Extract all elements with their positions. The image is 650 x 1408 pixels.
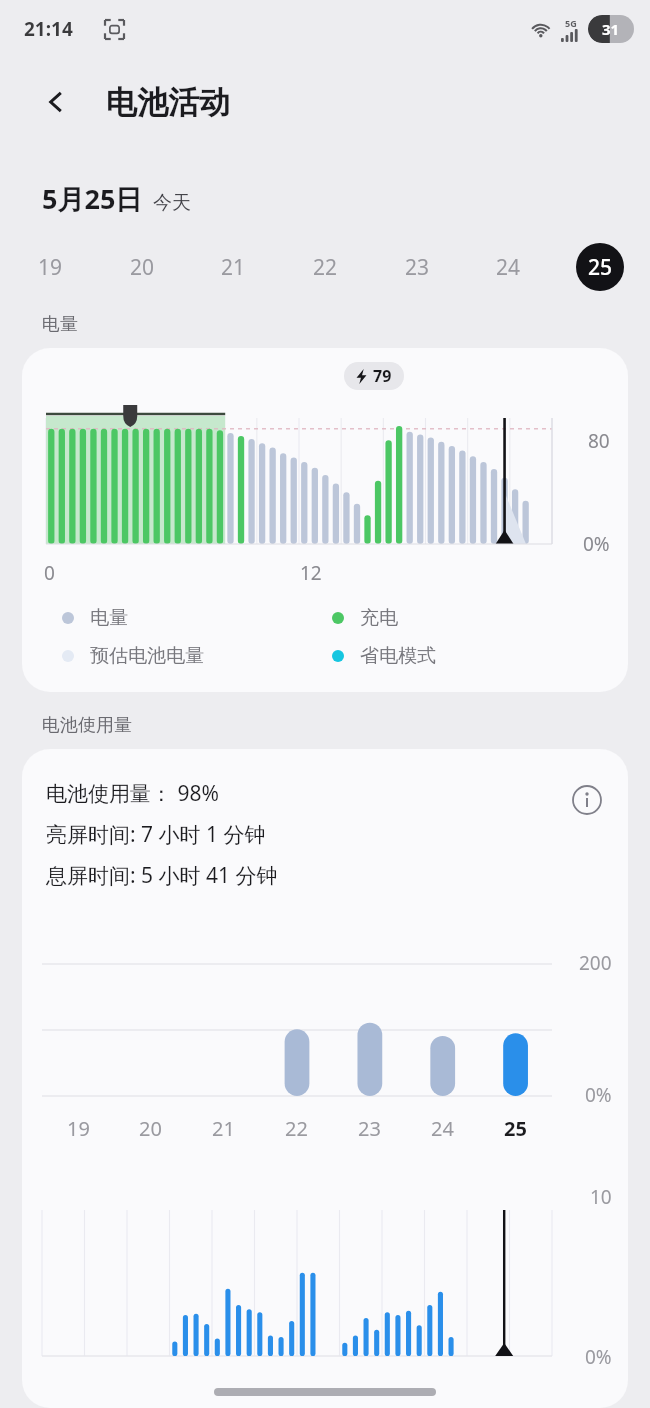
staticText: 5G	[565, 17, 577, 29]
staticText: 省电模式	[360, 644, 436, 668]
staticText: 0%	[585, 1344, 612, 1370]
staticText: 21:14	[24, 16, 73, 42]
button[interactable]: Info	[566, 779, 608, 821]
button[interactable]: 省电模式	[332, 644, 602, 668]
button[interactable]: 23	[393, 243, 441, 291]
staticText: 25	[588, 253, 613, 282]
button[interactable]: 20	[118, 243, 166, 291]
staticText: 0	[44, 560, 55, 586]
button[interactable]: 充电	[332, 606, 602, 630]
staticText: 25	[504, 1115, 527, 1142]
staticText: 今天	[153, 191, 191, 215]
button[interactable]: 22	[301, 243, 349, 291]
staticText: 0%	[583, 531, 610, 557]
staticText: 79	[373, 365, 392, 387]
button[interactable]: 电池使用量： 98%	[22, 749, 628, 1408]
staticText: 24	[431, 1115, 454, 1142]
staticText: 0%	[585, 1082, 612, 1108]
staticText: 200	[579, 950, 612, 976]
staticText: 80	[588, 428, 610, 454]
button[interactable]: 预估电池电量	[62, 644, 332, 668]
staticText: 亮屏时间: 7 小时 1 分钟	[46, 820, 266, 849]
staticText: 20	[130, 253, 155, 282]
staticText: 息屏时间: 5 小时 41 分钟	[46, 861, 278, 890]
button[interactable]: 24	[484, 243, 532, 291]
staticText: 5月25日	[42, 180, 143, 217]
button[interactable]: 25	[576, 243, 624, 291]
staticText: 充电	[360, 606, 398, 630]
staticText: 19	[67, 1115, 90, 1142]
button[interactable]: 19	[26, 243, 74, 291]
button[interactable]: 79	[22, 348, 628, 692]
staticText: 10	[590, 1184, 612, 1210]
staticText: 电池使用量： 98%	[46, 779, 219, 808]
staticText: 23	[405, 253, 430, 282]
staticText: 21	[212, 1115, 235, 1142]
staticText: 24	[496, 253, 521, 282]
staticText: 19	[38, 253, 63, 282]
staticText: 21	[221, 253, 246, 282]
button[interactable]: 21	[209, 243, 257, 291]
staticText: 电池活动	[106, 83, 230, 122]
staticText: 电量	[42, 313, 78, 336]
staticText: 电池使用量	[42, 714, 132, 737]
staticText: 22	[313, 253, 338, 282]
button[interactable]: 电量	[62, 606, 332, 630]
staticText: 20	[139, 1115, 162, 1142]
button[interactable]: Back	[34, 80, 78, 124]
staticText: 预估电池电量	[90, 644, 204, 668]
staticText: 12	[300, 560, 322, 586]
staticText: 22	[285, 1115, 308, 1142]
staticText: 电量	[90, 606, 128, 630]
staticText: 31	[602, 19, 620, 39]
staticText: 23	[358, 1115, 381, 1142]
